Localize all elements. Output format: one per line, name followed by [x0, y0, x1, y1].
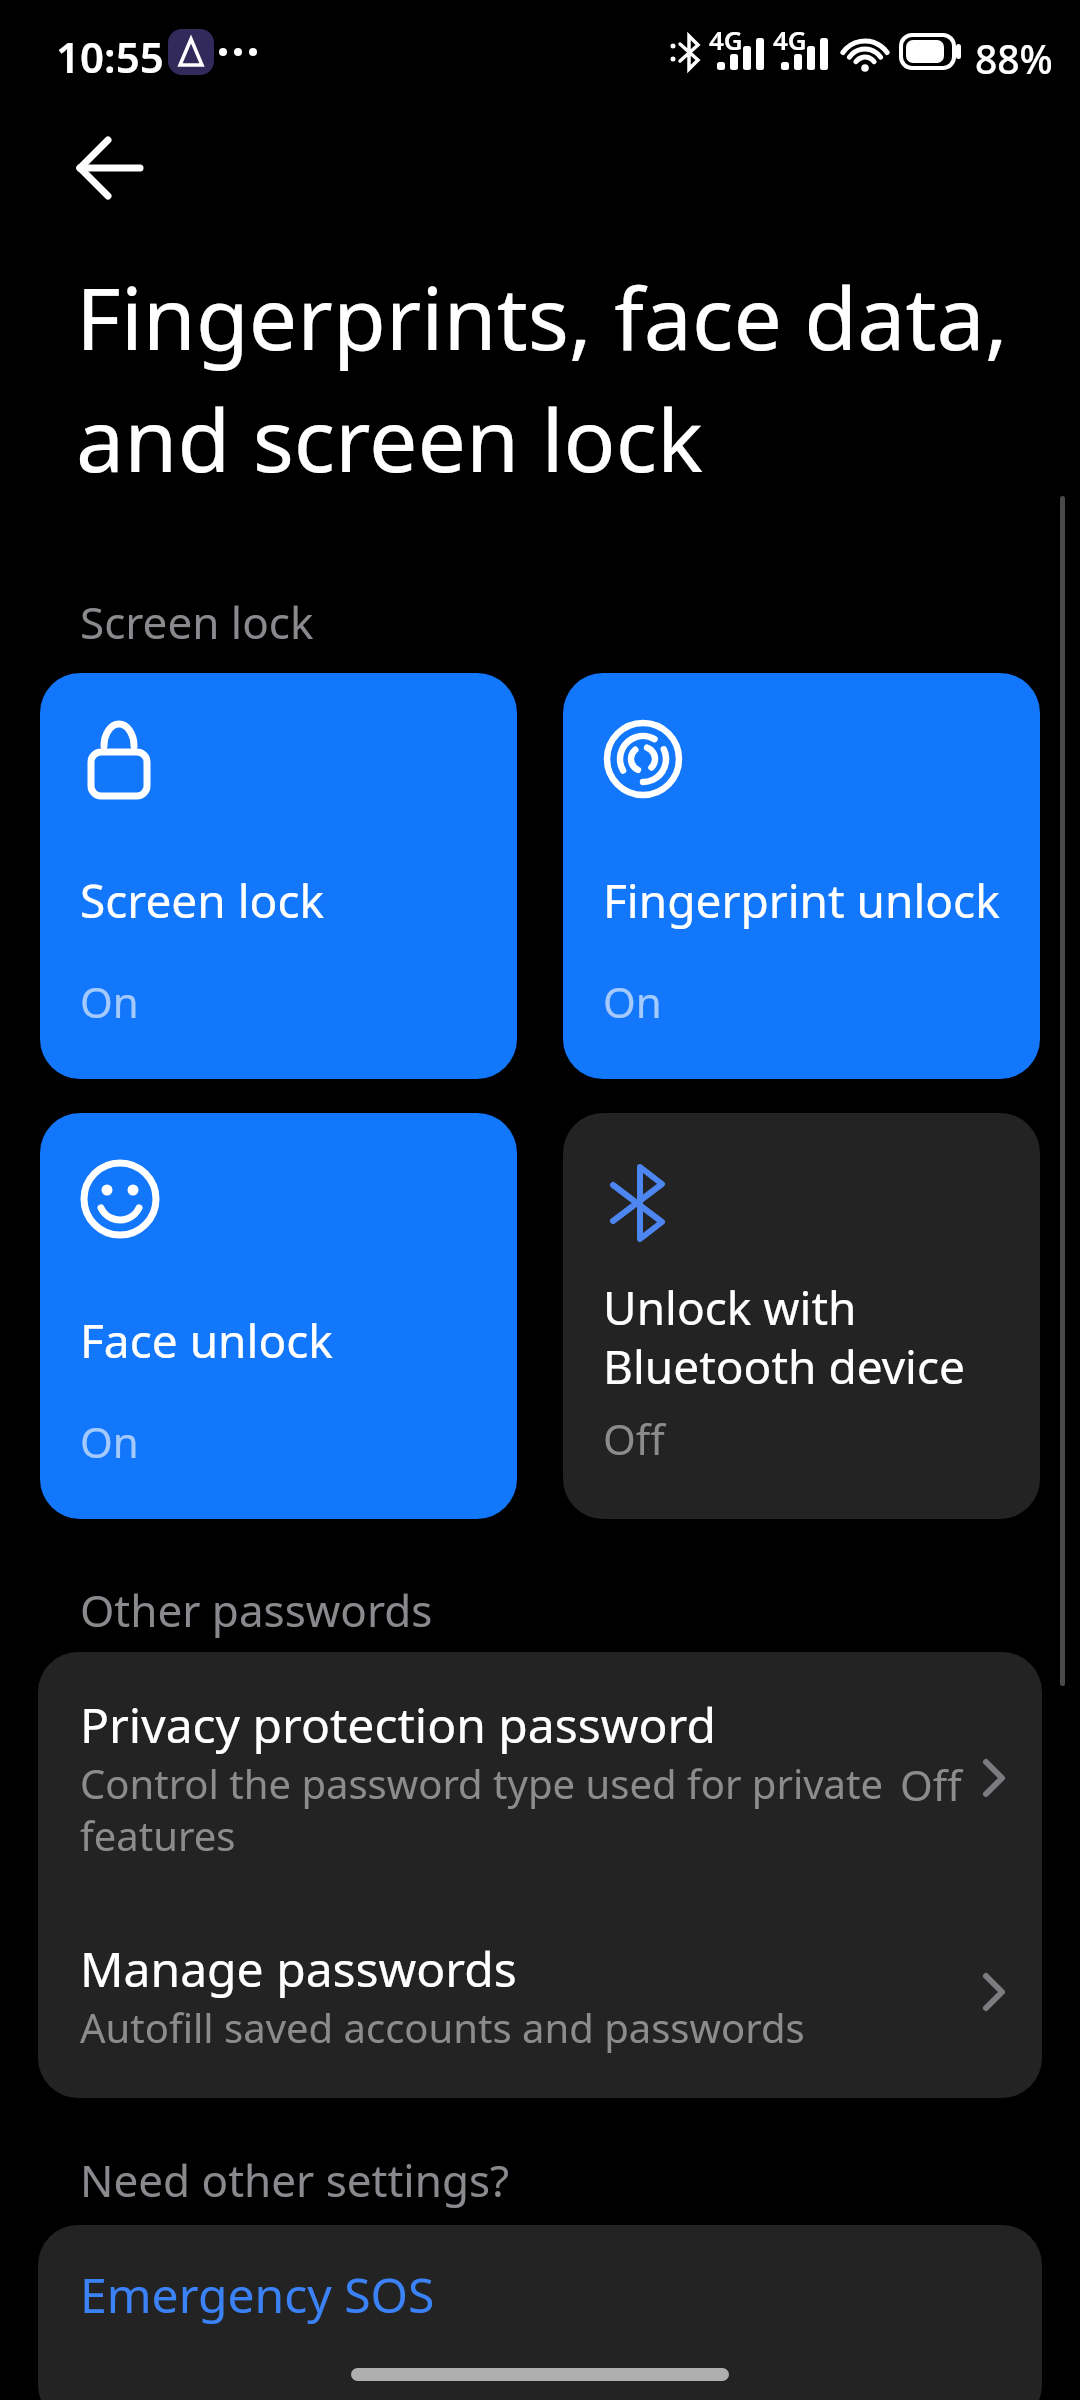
staticText: Other passwords: [80, 1580, 433, 1640]
staticText: Screen lock: [80, 592, 314, 652]
staticText: Autofill saved accounts and passwords: [80, 2000, 805, 2054]
staticText: Screen lock: [80, 869, 325, 932]
staticText: Fingerprints, face data, and screen lock: [76, 258, 1008, 497]
button[interactable]: Face unlock: [40, 1113, 517, 1519]
staticText: Emergency SOS: [80, 2262, 435, 2327]
button[interactable]: Screen lock: [40, 673, 517, 1079]
button[interactable]: Manage passwords: [38, 1918, 1042, 2098]
staticText: Privacy protection password: [80, 1692, 716, 1757]
staticText: On: [603, 973, 662, 1030]
button[interactable]: Emergency SOS: [38, 2225, 1042, 2400]
staticText: 88%: [975, 32, 1053, 85]
staticText: Control the password type used for priva…: [80, 1756, 884, 1863]
staticText: Unlock with Bluetooth device: [603, 1276, 965, 1397]
button[interactable]: Unlock with Bluetooth device: [563, 1113, 1040, 1519]
staticText: Manage passwords: [80, 1936, 517, 2001]
button[interactable]: [60, 130, 160, 206]
staticText: 10:55: [56, 28, 164, 85]
staticText: On: [80, 1413, 139, 1470]
staticText: Fingerprint unlock: [603, 869, 1000, 932]
staticText: On: [80, 973, 139, 1030]
staticText: Need other settings?: [80, 2150, 510, 2210]
staticText: Off: [603, 1410, 665, 1467]
staticText: 4G: [709, 22, 743, 57]
staticText: 4G: [773, 22, 807, 57]
button[interactable]: Privacy protection password: [38, 1652, 1042, 1882]
staticText: Face unlock: [80, 1309, 333, 1372]
button[interactable]: Fingerprint unlock: [563, 673, 1040, 1079]
staticText: Off: [900, 1756, 962, 1813]
